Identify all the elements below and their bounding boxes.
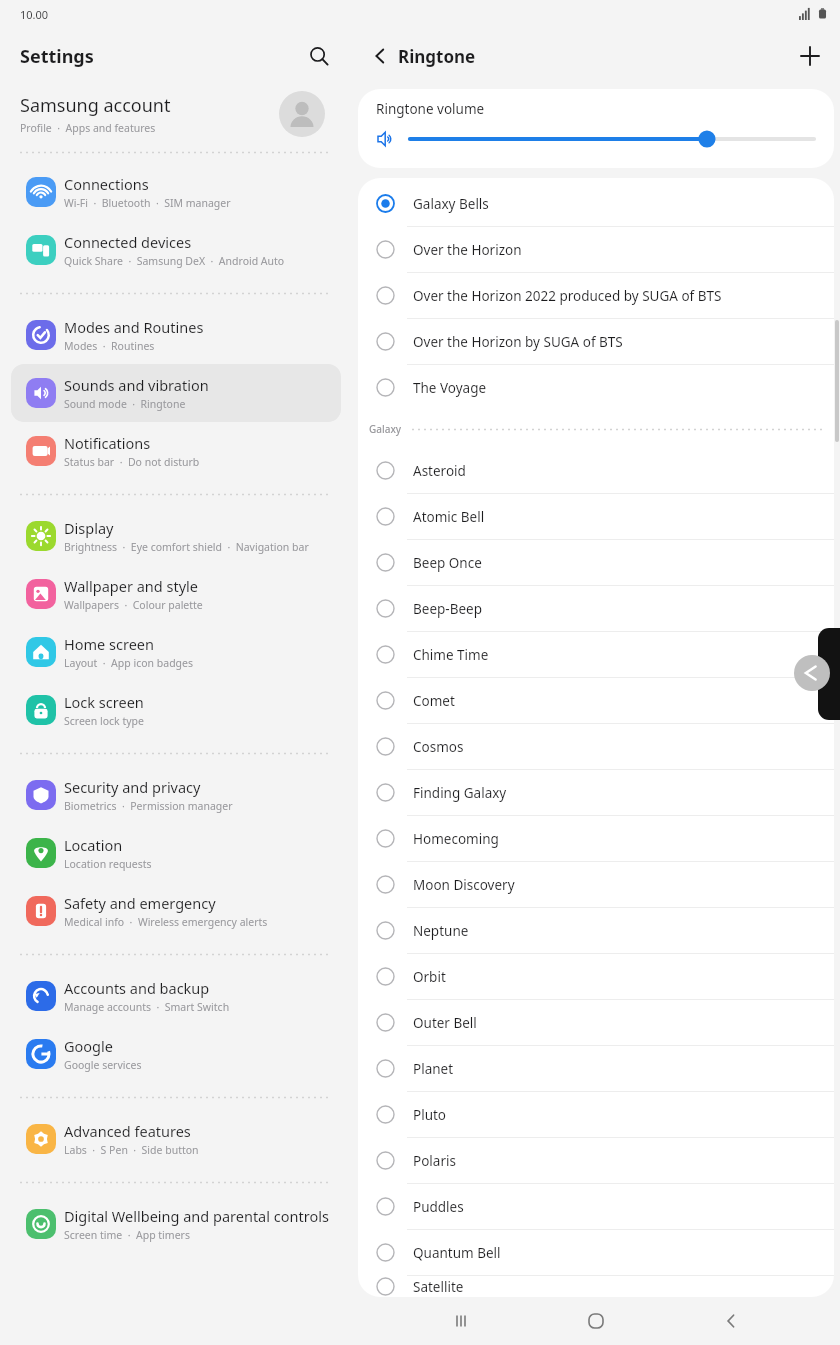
staticText: Wallpapers · Colour palette: [64, 598, 203, 612]
button[interactable]: Beep Once: [358, 540, 834, 585]
staticText: Sound mode · Ringtone: [64, 397, 186, 411]
staticText: Modes · Routines: [64, 339, 155, 353]
button[interactable]: Back: [705, 1297, 757, 1345]
staticText: Samsung account: [20, 93, 171, 118]
button[interactable]: Display: [11, 507, 341, 565]
staticText: Wi-Fi · Bluetooth · SIM manager: [64, 196, 231, 210]
staticText: Quantum Bell: [413, 1244, 501, 1262]
button[interactable]: Pluto: [358, 1092, 834, 1137]
button[interactable]: Location: [11, 824, 341, 882]
staticText: Display: [64, 518, 114, 538]
staticText: Google: [64, 1036, 113, 1056]
button[interactable]: Wallpaper and style: [11, 565, 341, 623]
staticText: Biometrics · Permission manager: [64, 799, 233, 813]
staticText: Digital Wellbeing and parental controls: [64, 1206, 329, 1226]
button[interactable]: Accounts and backup: [11, 967, 341, 1025]
staticText: Home screen: [64, 634, 154, 654]
staticText: Polaris: [413, 1152, 456, 1170]
button[interactable]: Home screen: [11, 623, 341, 681]
staticText: Galaxy: [369, 422, 402, 436]
button[interactable]: Outer Bell: [358, 1000, 834, 1045]
button[interactable]: Polaris: [358, 1138, 834, 1183]
button[interactable]: Recents: [435, 1297, 487, 1345]
staticText: Labs · S Pen · Side button: [64, 1143, 199, 1157]
staticText: Satellite: [413, 1278, 464, 1296]
staticText: Google services: [64, 1058, 142, 1072]
button[interactable]: Cosmos: [358, 724, 834, 769]
staticText: Chime Time: [413, 646, 489, 664]
button[interactable]: Planet: [358, 1046, 834, 1091]
button[interactable]: Connections: [11, 163, 341, 221]
staticText: Advanced features: [64, 1121, 191, 1141]
staticText: Location requests: [64, 857, 152, 871]
staticText: Sounds and vibration: [64, 375, 209, 395]
button[interactable]: Edge panel handle: [818, 628, 840, 720]
staticText: Beep Once: [413, 554, 482, 572]
button[interactable]: Beep-Beep: [358, 586, 834, 631]
button[interactable]: Connected devices: [11, 221, 341, 279]
staticText: Over the Horizon 2022 produced by SUGA o…: [413, 287, 722, 305]
button[interactable]: Security and privacy: [11, 766, 341, 824]
staticText: 10.00: [20, 7, 49, 22]
staticText: Orbit: [413, 968, 446, 986]
staticText: Brightness · Eye comfort shield · Naviga…: [64, 540, 309, 554]
button[interactable]: Modes and Routines: [11, 306, 341, 364]
staticText: Moon Discovery: [413, 876, 515, 894]
button[interactable]: Add: [790, 36, 830, 76]
button[interactable]: Over the Horizon by SUGA of BTS: [358, 319, 834, 364]
staticText: Quick Share · Samsung DeX · Android Auto: [64, 254, 285, 268]
button[interactable]: Orbit: [358, 954, 834, 999]
staticText: Wallpaper and style: [64, 576, 198, 596]
staticText: Settings: [20, 44, 94, 69]
button[interactable]: Asteroid: [358, 448, 834, 493]
button[interactable]: Homecoming: [358, 816, 834, 861]
button[interactable]: Puddles: [358, 1184, 834, 1229]
staticText: Beep-Beep: [413, 600, 482, 618]
button[interactable]: Satellite: [358, 1276, 834, 1297]
staticText: Location: [64, 835, 123, 855]
staticText: Notifications: [64, 433, 151, 453]
button[interactable]: The Voyage: [358, 365, 834, 410]
staticText: The Voyage: [413, 379, 487, 397]
button[interactable]: Digital Wellbeing and parental controls: [11, 1195, 341, 1253]
staticText: Finding Galaxy: [413, 784, 507, 802]
staticText: Screen time · App timers: [64, 1228, 190, 1242]
button[interactable]: Moon Discovery: [358, 862, 834, 907]
staticText: Lock screen: [64, 692, 144, 712]
button[interactable]: Sounds and vibration: [11, 364, 341, 422]
staticText: Ringtone volume: [376, 100, 485, 118]
staticText: Profile · Apps and features: [20, 121, 156, 135]
staticText: Safety and emergency: [64, 893, 216, 913]
button[interactable]: Search: [298, 35, 340, 77]
staticText: Medical info · Wireless emergency alerts: [64, 915, 268, 929]
staticText: Planet: [413, 1060, 454, 1078]
button[interactable]: Lock screen: [11, 681, 341, 739]
button[interactable]: Chime Time: [358, 632, 834, 677]
button[interactable]: Back: [360, 36, 400, 76]
staticText: Screen lock type: [64, 714, 144, 728]
button[interactable]: Over the Horizon 2022 produced by SUGA o…: [358, 273, 834, 318]
button[interactable]: Galaxy Bells: [358, 181, 834, 226]
button[interactable]: Quantum Bell: [358, 1230, 834, 1275]
staticText: Asteroid: [413, 462, 466, 480]
staticText: Accounts and backup: [64, 978, 210, 998]
button[interactable]: Home: [570, 1297, 622, 1345]
staticText: Connections: [64, 174, 149, 194]
button[interactable]: Advanced features: [11, 1110, 341, 1168]
button[interactable]: Samsung account: [11, 84, 341, 144]
staticText: Ringtone: [398, 45, 476, 68]
button[interactable]: Finding Galaxy: [358, 770, 834, 815]
staticText: Atomic Bell: [413, 508, 485, 526]
button[interactable]: Comet: [358, 678, 834, 723]
staticText: Comet: [413, 692, 455, 710]
staticText: Homecoming: [413, 830, 499, 848]
button[interactable]: Neptune: [358, 908, 834, 953]
button[interactable]: Atomic Bell: [358, 494, 834, 539]
button[interactable]: Over the Horizon: [358, 227, 834, 272]
staticText: Status bar · Do not disturb: [64, 455, 200, 469]
button[interactable]: Google: [11, 1025, 341, 1083]
button[interactable]: Safety and emergency: [11, 882, 341, 940]
staticText: Neptune: [413, 922, 469, 940]
button[interactable]: Notifications: [11, 422, 341, 480]
staticText: Over the Horizon by SUGA of BTS: [413, 333, 623, 351]
